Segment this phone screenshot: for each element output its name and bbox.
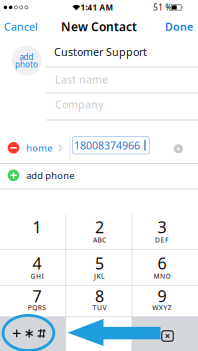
staticText: 2 [95,216,104,238]
button[interactable]: 7 [0,286,66,317]
staticText: 9 [157,285,166,307]
staticText: 7 [32,285,41,307]
staticText: Last name [55,72,108,86]
button[interactable]: Done [162,18,196,34]
button[interactable]: 0 [66,317,132,351]
button[interactable]: 2 [66,214,132,249]
button[interactable]: home [0,0,198,351]
staticText: Done [165,19,193,34]
staticText: 18008374966 [74,138,140,152]
staticText: JKL [94,272,105,281]
button[interactable]: 8 [66,286,132,317]
staticText: MNO [153,272,170,281]
button[interactable]: 5 [66,249,132,286]
staticText: WXYZ [152,303,172,312]
staticText: New Contact [61,18,137,34]
staticText: 1:41 AM [80,2,113,13]
staticText: 6 [157,253,166,274]
staticText: DEF [155,236,169,244]
button[interactable]: 1 [0,214,66,249]
staticText: Company [55,97,103,111]
staticText: home [26,142,52,154]
button[interactable]: Cancel [1,18,41,34]
staticText: add phone [26,169,74,181]
button[interactable]: add [11,45,41,75]
staticText: PQRS [28,303,46,312]
button[interactable] [162,331,173,341]
staticText: TUV [92,303,106,312]
staticText: 0 [95,324,103,344]
staticText: ABC [93,236,106,244]
button[interactable] [174,144,183,153]
staticText: Cancel [4,19,38,34]
staticText: Customer Support [54,45,147,59]
staticText: add [19,52,33,62]
button[interactable]: 3 [132,214,198,249]
staticText: 4 [32,253,41,274]
button[interactable] [0,317,66,351]
staticText: 51 % [153,2,172,13]
button[interactable]: 4 [0,249,66,286]
staticText: GHI [30,272,43,281]
button[interactable]: Last name [0,0,198,351]
button[interactable]: add phone [0,0,198,351]
staticText: 5 [95,253,104,274]
staticText: 3 [157,216,166,238]
staticText: photo [15,59,38,70]
button[interactable]: Company [0,0,198,351]
button[interactable]: 9 [132,286,198,317]
button[interactable]: Customer Support [0,0,198,351]
button[interactable]: 6 [132,249,198,286]
button[interactable]: 18008374966 [74,138,198,152]
staticText: 8 [95,285,104,307]
staticText: 1 [32,216,41,238]
